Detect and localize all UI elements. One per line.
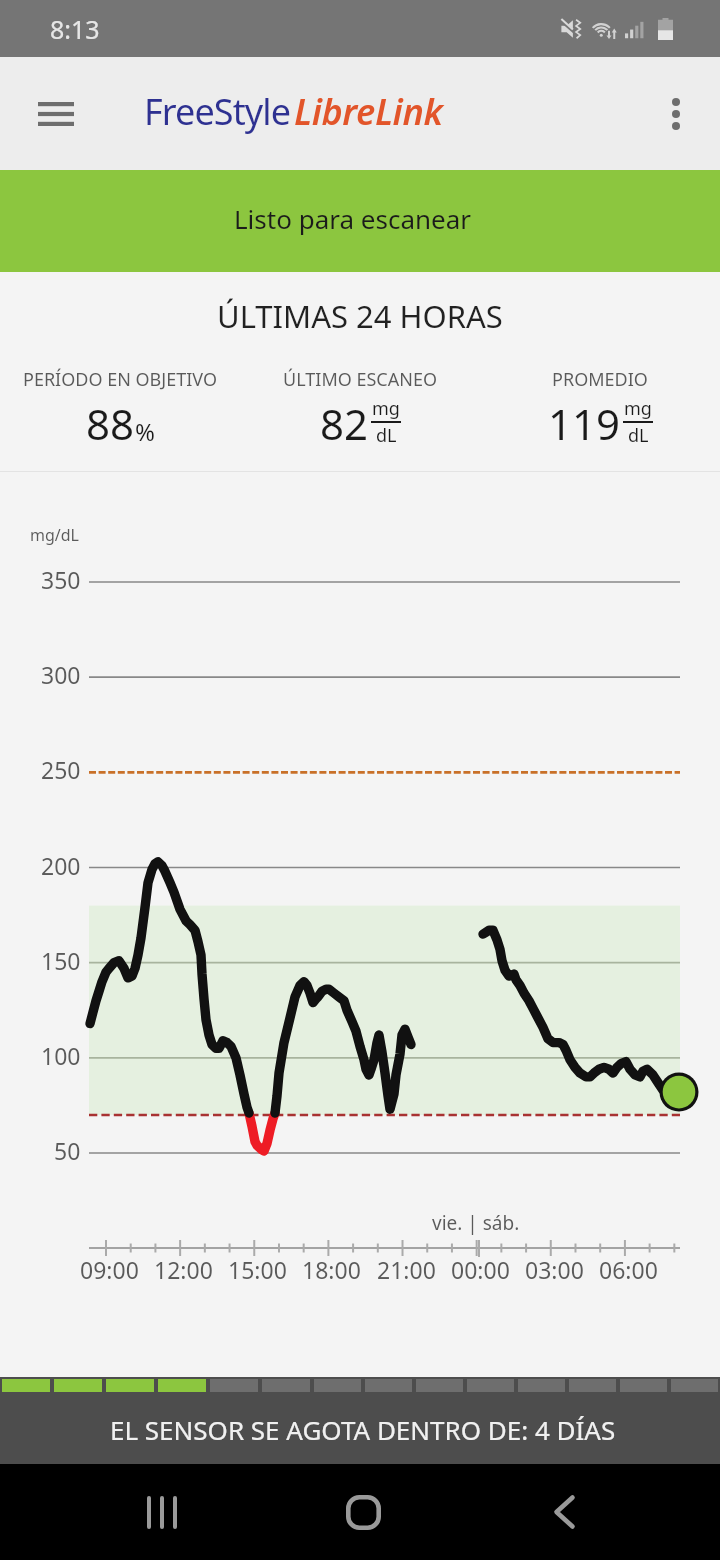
staticText: LibreLink	[294, 87, 443, 136]
staticText: EL SENSOR SE AGOTA DENTRO DE: 4 DÍAS	[110, 1412, 616, 1447]
staticText: vie. | sáb.	[432, 1210, 520, 1236]
button[interactable]: PROMEDIO	[480, 346, 720, 471]
button[interactable]: Back	[524, 1464, 604, 1560]
staticText: 82	[320, 395, 369, 452]
staticText: 350	[41, 564, 81, 595]
staticText: 03:00	[525, 1254, 584, 1285]
staticText: Listo para escanear	[234, 201, 472, 236]
staticText: PROMEDIO	[552, 367, 648, 392]
button[interactable]: Recent apps	[122, 1464, 202, 1560]
staticText: 200	[41, 850, 81, 881]
staticText: 12:00	[154, 1254, 213, 1285]
staticText: 88	[86, 395, 135, 452]
staticText: 21:00	[377, 1254, 436, 1285]
staticText: 300	[41, 659, 81, 690]
staticText: ÚLTIMAS 24 HORAS	[217, 295, 503, 337]
staticText: mg/dL	[30, 524, 79, 546]
staticText: PERÍODO EN OBJETIVO	[23, 367, 217, 392]
staticText: dL	[628, 423, 649, 448]
staticText: %	[135, 415, 155, 448]
button[interactable]: ÚLTIMO ESCANEO	[240, 346, 480, 471]
staticText: 06:00	[599, 1254, 658, 1285]
staticText: dL	[376, 423, 397, 448]
staticText: 00:00	[451, 1254, 510, 1285]
staticText: 8:13	[50, 12, 100, 46]
staticText: mg	[624, 396, 652, 421]
staticText: 150	[41, 945, 81, 976]
staticText: ÚLTIMO ESCANEO	[283, 367, 437, 392]
button[interactable]: Home	[323, 1464, 403, 1560]
staticText: 119	[548, 395, 621, 452]
button[interactable]: EL SENSOR SE AGOTA DENTRO DE: 4 DÍAS	[0, 1377, 720, 1464]
staticText: mg	[372, 396, 400, 421]
button[interactable]: Listo para escanear	[0, 170, 720, 272]
staticText: 15:00	[228, 1254, 287, 1285]
staticText: 18:00	[302, 1254, 361, 1285]
staticText: FreeStyle	[144, 87, 291, 136]
staticText: 250	[41, 754, 81, 785]
button[interactable]: Menu	[25, 83, 87, 145]
staticText: 100	[41, 1040, 81, 1071]
staticText: 50	[54, 1135, 81, 1166]
staticText: 09:00	[80, 1254, 139, 1285]
button[interactable]: PERÍODO EN OBJETIVO	[0, 346, 240, 471]
button[interactable]: More options	[648, 86, 704, 142]
